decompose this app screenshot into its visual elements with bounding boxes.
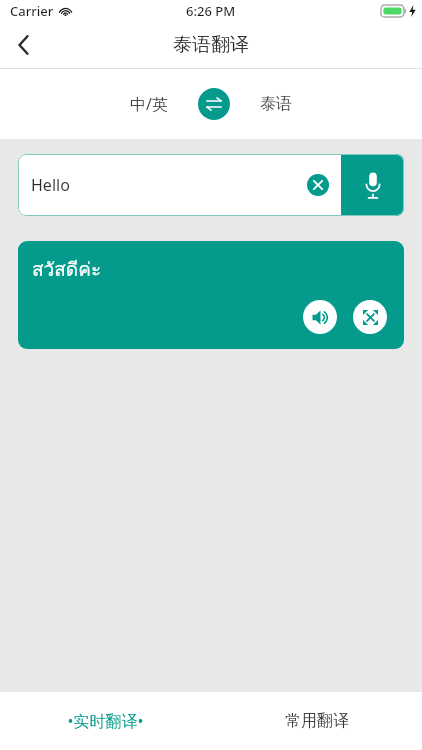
staticText: 泰语 bbox=[260, 94, 292, 114]
button[interactable]: Swap languages bbox=[198, 88, 230, 120]
button[interactable]: 中/英 bbox=[124, 85, 174, 123]
button[interactable]: Clear text bbox=[295, 162, 341, 208]
button[interactable]: สวัสดีค่ะ bbox=[18, 241, 404, 349]
button[interactable]: Fullscreen bbox=[353, 300, 387, 334]
staticText: 中/英 bbox=[130, 93, 168, 115]
button[interactable]: Voice input bbox=[341, 154, 404, 216]
staticText: 泰语翻译 bbox=[173, 33, 249, 57]
button[interactable]: •实时翻译• bbox=[0, 692, 211, 750]
staticText: Carrier bbox=[10, 2, 54, 20]
staticText: •实时翻译• bbox=[67, 710, 144, 732]
staticText: 常用翻译 bbox=[285, 711, 349, 731]
button[interactable]: Play pronunciation bbox=[303, 300, 337, 334]
button[interactable]: 常用翻译 bbox=[211, 692, 422, 750]
button[interactable]: Back bbox=[0, 22, 46, 68]
button[interactable]: 泰语 bbox=[254, 86, 298, 122]
staticText: Hello bbox=[31, 174, 295, 196]
staticText: 6:26 PM bbox=[186, 2, 236, 20]
staticText: สวัสดีค่ะ bbox=[32, 254, 102, 284]
